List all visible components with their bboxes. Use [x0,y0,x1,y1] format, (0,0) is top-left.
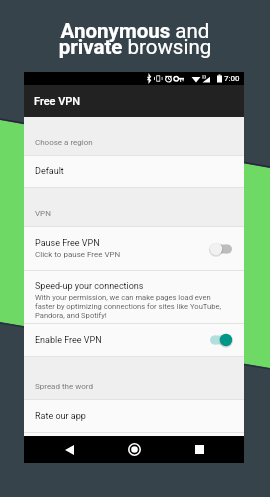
staticText: Pause Free VPN [35,238,100,249]
button[interactable]: Recent apps [179,436,219,463]
button[interactable]: Back [49,436,89,463]
button[interactable]: Default [24,156,244,187]
staticText: Spread the word [35,382,93,391]
staticText: With your permission, we can make pages … [35,293,221,320]
staticText: VPN [35,209,51,218]
button[interactable]: Enable Free VPN [24,324,244,356]
staticText: Default [35,166,64,177]
staticText: Speed-up your connections [35,281,144,292]
button[interactable]: Home [114,436,154,463]
button[interactable]: Pause Free VPN [24,227,244,270]
staticText: Choose a region [35,138,93,147]
button[interactable]: Toggle off [208,241,234,257]
button[interactable]: Toggle on [208,332,234,348]
button[interactable]: Speed-up your connections [24,271,244,323]
button[interactable]: Rate our app [24,400,244,432]
staticText: Anonymous and private browsing [0,19,270,59]
staticText: Rate our app [35,411,86,422]
staticText: Click to pause Free VPN [35,250,121,259]
staticText: Free VPN [34,95,81,108]
staticText: 7:00 [224,74,240,83]
staticText: Enable Free VPN [35,335,208,346]
